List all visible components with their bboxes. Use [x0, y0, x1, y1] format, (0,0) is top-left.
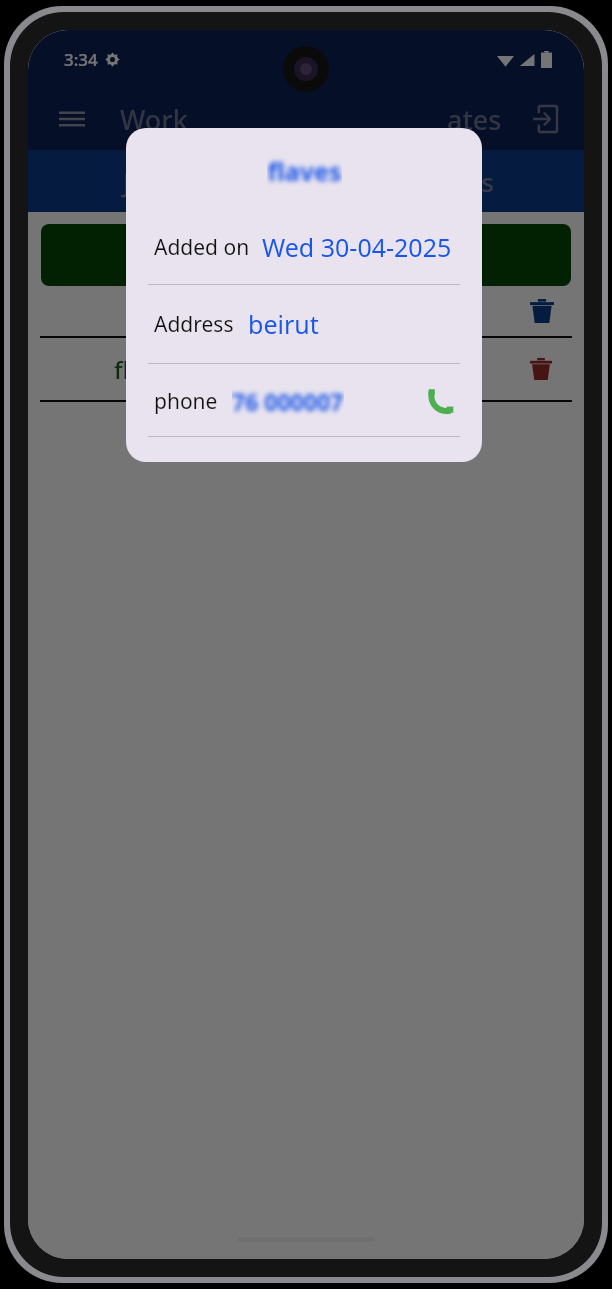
staticText: flaves [114, 353, 181, 386]
button[interactable]: Add new place [41, 224, 571, 286]
button[interactable]: flaves [28, 338, 584, 400]
button[interactable]: Journal [28, 150, 306, 212]
button[interactable]: Delete [522, 350, 560, 388]
staticText: flaves [267, 154, 342, 188]
button[interactable]: Delete all [522, 291, 562, 331]
staticText: Reports [397, 164, 494, 199]
staticText: Added on [154, 233, 250, 262]
staticText: Wed 30-04-2025 [262, 230, 452, 264]
button[interactable]: Logout [522, 97, 566, 141]
staticText: Work [120, 101, 188, 138]
staticText: 76 000007 [232, 386, 344, 417]
staticText: ates [447, 101, 502, 138]
staticText: Address [154, 310, 234, 339]
staticText: 3:34 [64, 48, 98, 71]
staticText: 1 [393, 239, 407, 272]
staticText: Add new place [205, 239, 369, 272]
button[interactable]: Menu [50, 97, 94, 141]
staticText: Journal [123, 164, 212, 199]
button[interactable]: Call [422, 382, 460, 420]
staticText: Name [269, 294, 344, 328]
staticText: beirut [248, 307, 319, 341]
staticText: phone [154, 387, 218, 416]
button[interactable]: Reports [306, 150, 584, 212]
